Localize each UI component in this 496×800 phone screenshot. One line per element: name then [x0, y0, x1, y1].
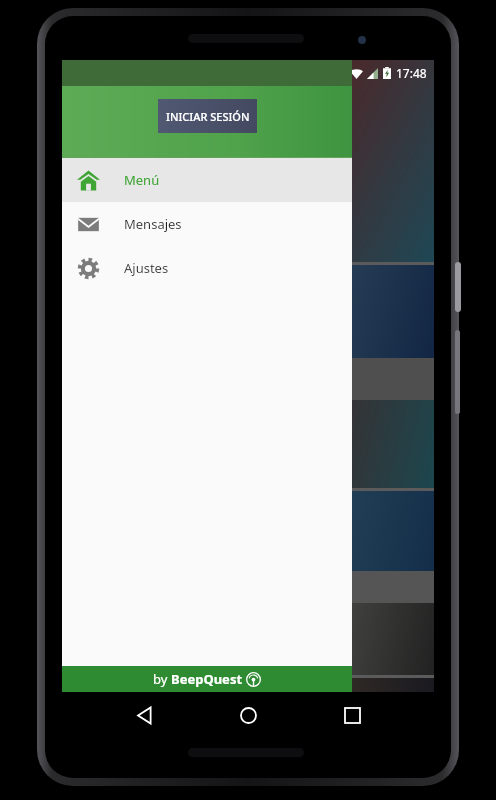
button[interactable]: by — [62, 666, 352, 692]
staticText: by — [153, 670, 171, 688]
button[interactable]: Back — [122, 693, 166, 737]
staticText: 17:48 — [396, 65, 427, 81]
staticText: BeepQuest — [171, 670, 243, 688]
staticText: INICIAR SESIÓN — [166, 109, 250, 124]
button[interactable]: Home — [226, 693, 270, 737]
button[interactable]: Ajustes — [62, 246, 352, 290]
button[interactable]: INICIAR SESIÓN — [158, 99, 257, 133]
button[interactable]: Menú — [62, 158, 352, 202]
button[interactable]: Recent apps — [330, 693, 374, 737]
button[interactable]: Mensajes — [62, 202, 352, 246]
staticText: Menú — [124, 171, 160, 189]
staticText: Mensajes — [124, 215, 182, 233]
staticText: Ajustes — [124, 259, 169, 277]
